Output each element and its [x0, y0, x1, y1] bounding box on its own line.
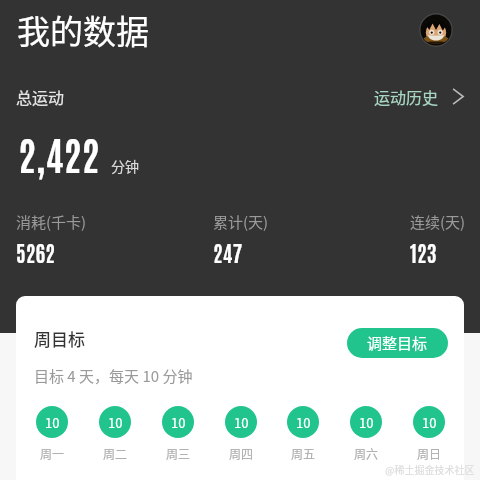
button[interactable]: Profile	[419, 13, 453, 47]
staticText: 10	[234, 413, 249, 432]
staticText: 2,422	[18, 128, 100, 178]
staticText: 10	[296, 413, 311, 432]
staticText: 10	[45, 413, 60, 432]
staticText: 5262	[16, 239, 56, 266]
staticText: 周五	[291, 445, 316, 462]
button[interactable]: 调整目标	[347, 328, 448, 358]
button[interactable]: 10	[350, 406, 382, 462]
staticText: 周日	[417, 445, 442, 462]
button[interactable]: 10	[36, 406, 68, 462]
staticText: 总运动	[16, 85, 65, 108]
staticText: 周六	[354, 445, 379, 462]
button[interactable]: 10	[287, 406, 319, 462]
staticText: 周三	[166, 445, 191, 462]
staticText: 目标 4 天，每天 10 分钟	[34, 365, 193, 387]
staticText: 10	[171, 413, 186, 432]
staticText: 周一	[40, 445, 65, 462]
staticText: 消耗(千卡)	[16, 211, 87, 233]
staticText: 调整目标	[367, 332, 428, 354]
button[interactable]: 10	[413, 406, 445, 462]
staticText: 10	[422, 413, 437, 432]
staticText: 分钟	[111, 156, 139, 176]
staticText: 123	[410, 239, 437, 266]
button[interactable]: 10	[162, 406, 194, 462]
staticText: 运动历史	[374, 85, 439, 108]
staticText: 10	[359, 413, 374, 432]
staticText: 连续(天)	[410, 211, 466, 233]
button[interactable]: 运动历史	[374, 85, 467, 108]
staticText: 10	[108, 413, 123, 432]
staticText: 周目标	[34, 326, 85, 351]
staticText: 周二	[103, 445, 128, 462]
button[interactable]: 10	[225, 406, 257, 462]
staticText: 247	[213, 239, 243, 266]
staticText: 周四	[229, 445, 254, 462]
staticText: 我的数据	[17, 6, 149, 54]
staticText: 累计(天)	[213, 211, 269, 233]
button[interactable]: 10	[99, 406, 131, 462]
staticText: @稀土掘金技术社区	[385, 462, 475, 476]
